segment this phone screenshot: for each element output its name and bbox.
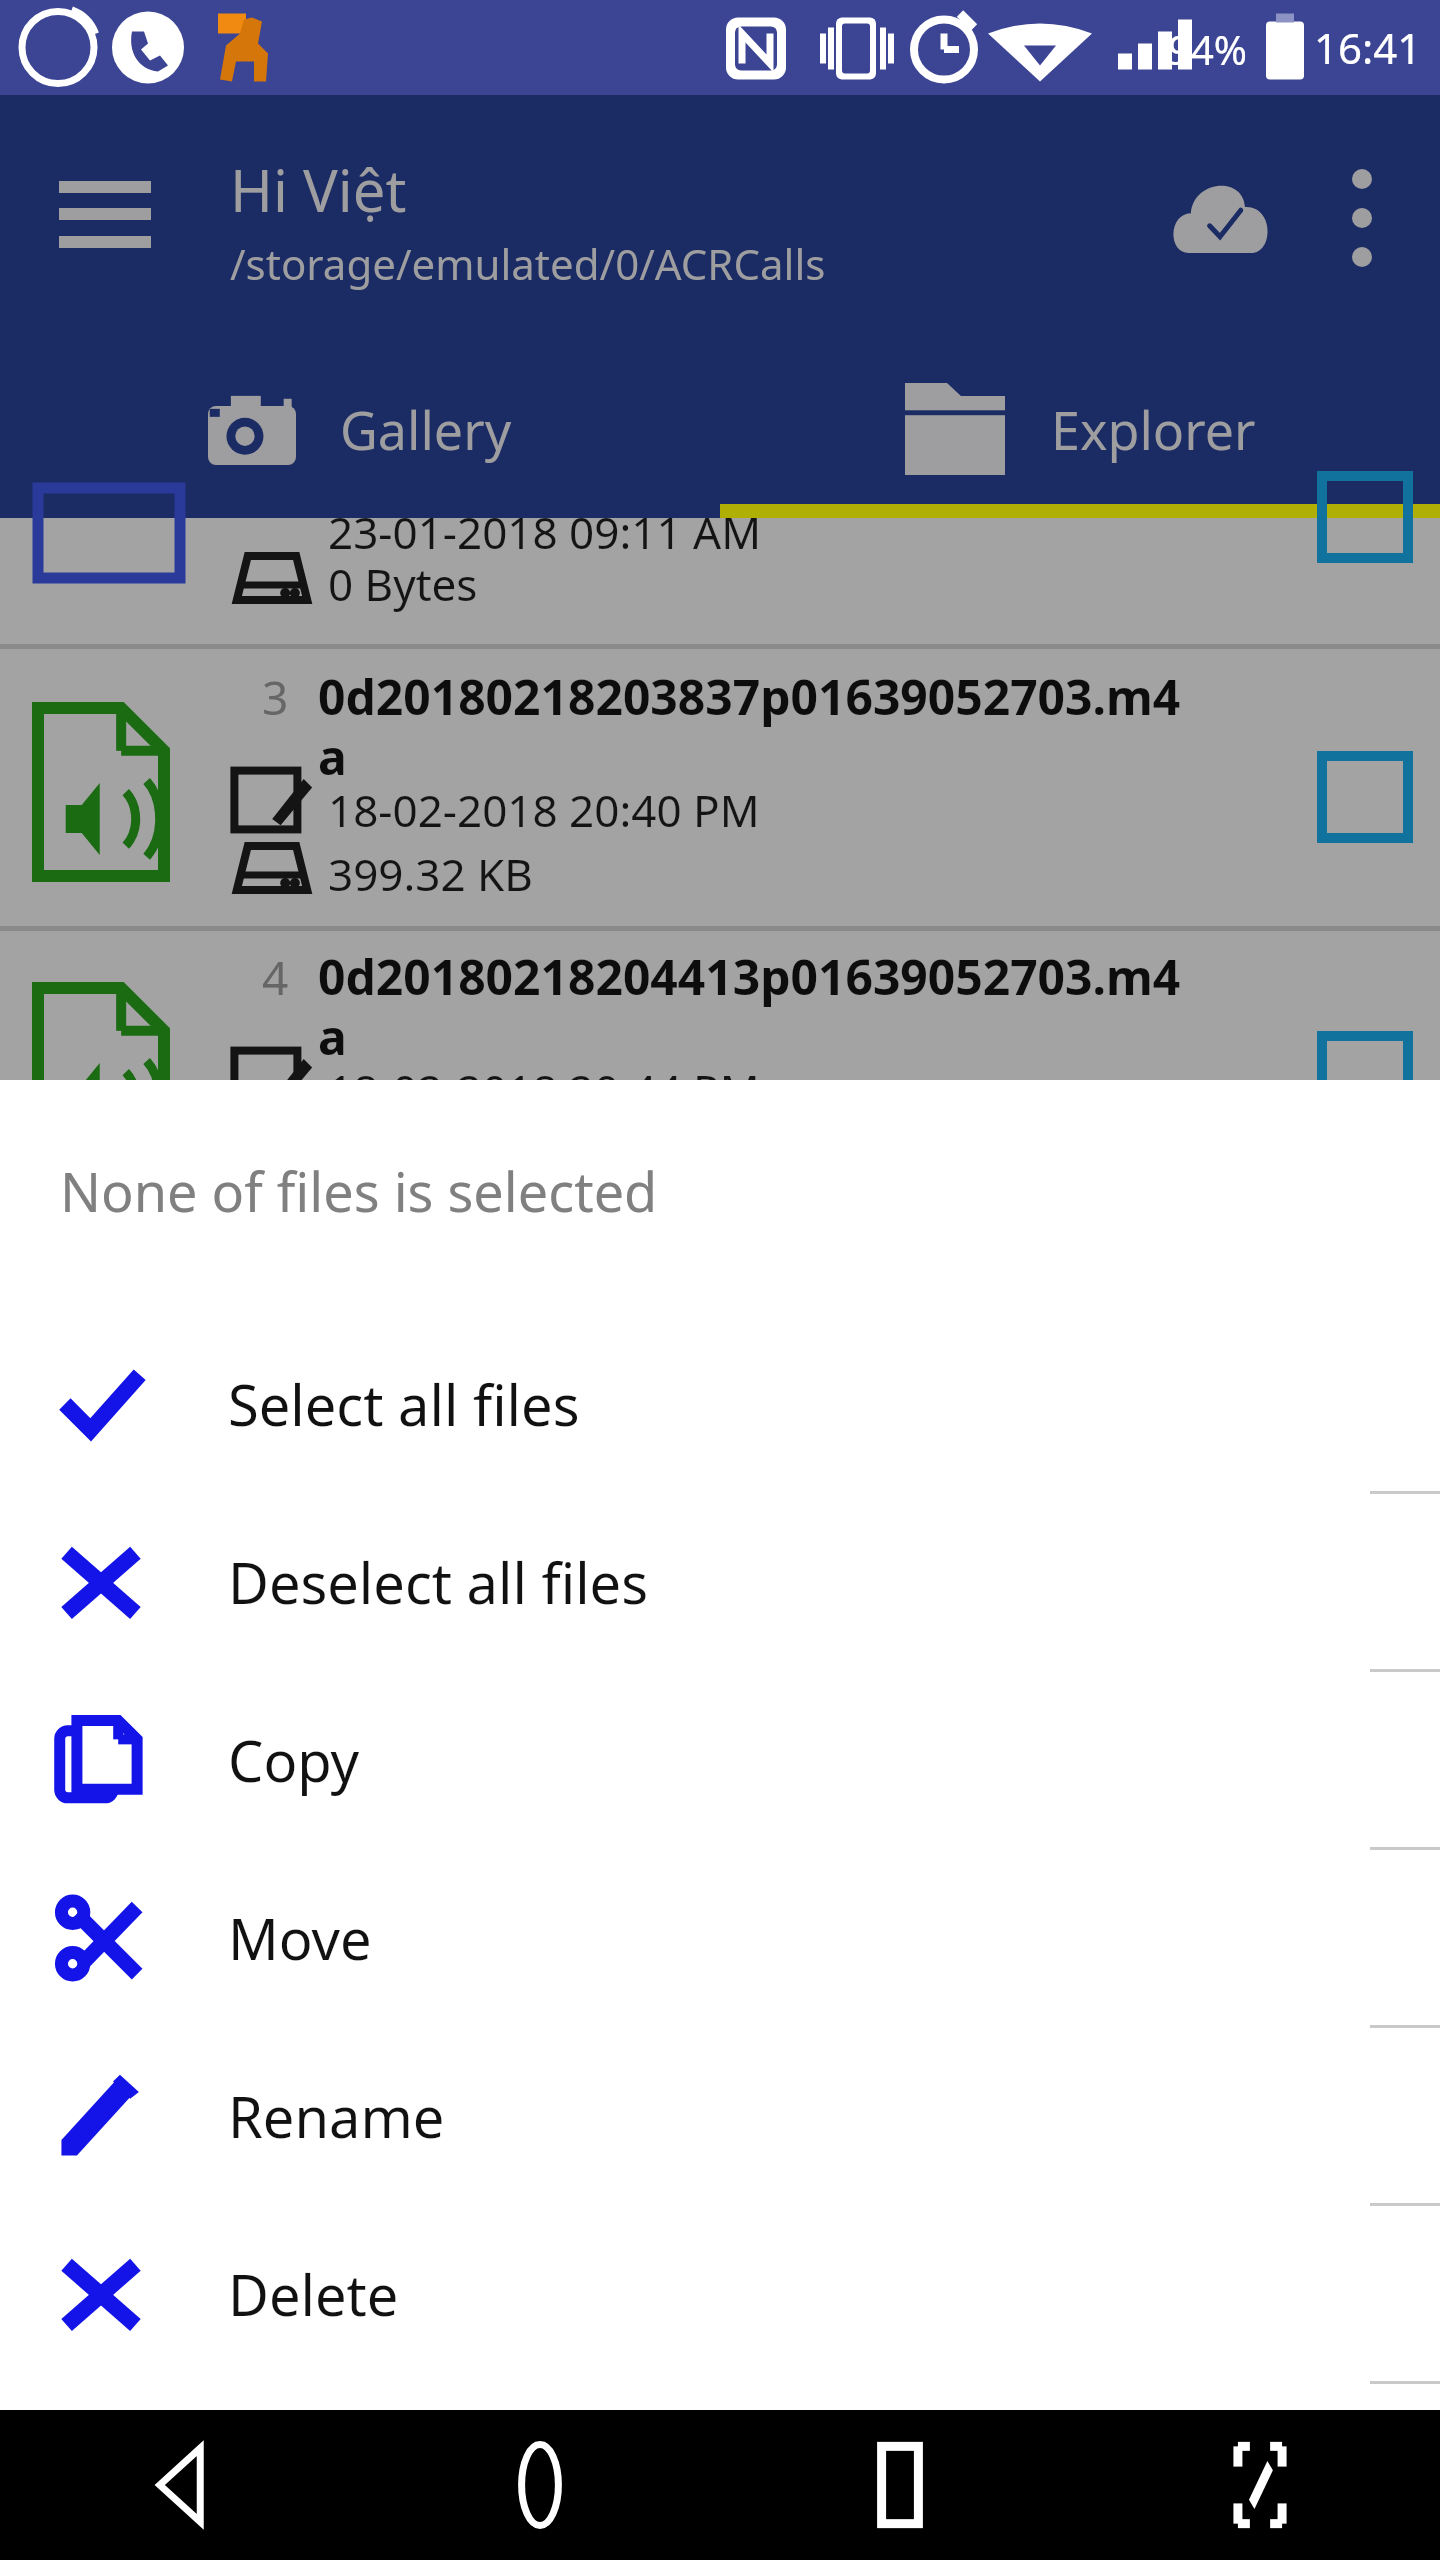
staticText: 94% [1168,22,1247,76]
button[interactable]: Gallery [0,340,720,518]
button[interactable]: Move [0,1850,1440,2025]
staticText: 0 Bytes [328,554,478,614]
button[interactable]: Select all files [0,1316,1440,1491]
staticText: Explorer [1051,394,1256,465]
button[interactable]: Back [0,2410,360,2560]
button[interactable]: More options [1302,158,1422,278]
button[interactable]: Home [360,2410,720,2560]
staticText: Delete [228,2256,399,2332]
staticText: 0d20180218204413p01639052703.m4 [318,944,1181,1009]
button[interactable]: Cloud sync status [1150,148,1290,288]
button[interactable]: Copy [0,1672,1440,1847]
staticText: 23-01-2018 09:11 AM [328,502,762,562]
button[interactable]: Screenshot [1080,2410,1440,2560]
staticText: 3 [262,666,289,729]
staticText: a [318,1004,347,1069]
button[interactable]: Rename [0,2028,1440,2203]
staticText: Copy [228,1722,360,1798]
staticText: Hi Việt [230,150,407,229]
button[interactable]: Explorer [720,340,1440,518]
staticText: 0d20180218203837p01639052703.m4 [318,664,1181,729]
staticText: /storage/emulated/0/ACRCalls [230,235,826,292]
staticText: 18-02-2018 20:40 PM [328,780,760,840]
button[interactable]: Deselect all files [0,1494,1440,1669]
staticText: Move [228,1900,372,1976]
staticText: 4 [262,946,289,1009]
staticText: None of files is selected [60,1154,658,1228]
staticText: a [318,724,347,789]
staticText: 18-02-2018 20:44 PM [328,1060,760,1120]
staticText: Gallery [340,394,512,465]
staticText: Rename [228,2078,445,2154]
staticText: 399.32 KB [328,844,533,904]
button[interactable]: Open navigation menu [40,153,170,283]
button[interactable]: Delete [0,2206,1440,2381]
staticText: Select all files [228,1366,580,1442]
button[interactable]: Recent apps [720,2410,1080,2560]
staticText: Deselect all files [228,1544,648,1620]
staticText: 16:41 [1314,19,1422,76]
